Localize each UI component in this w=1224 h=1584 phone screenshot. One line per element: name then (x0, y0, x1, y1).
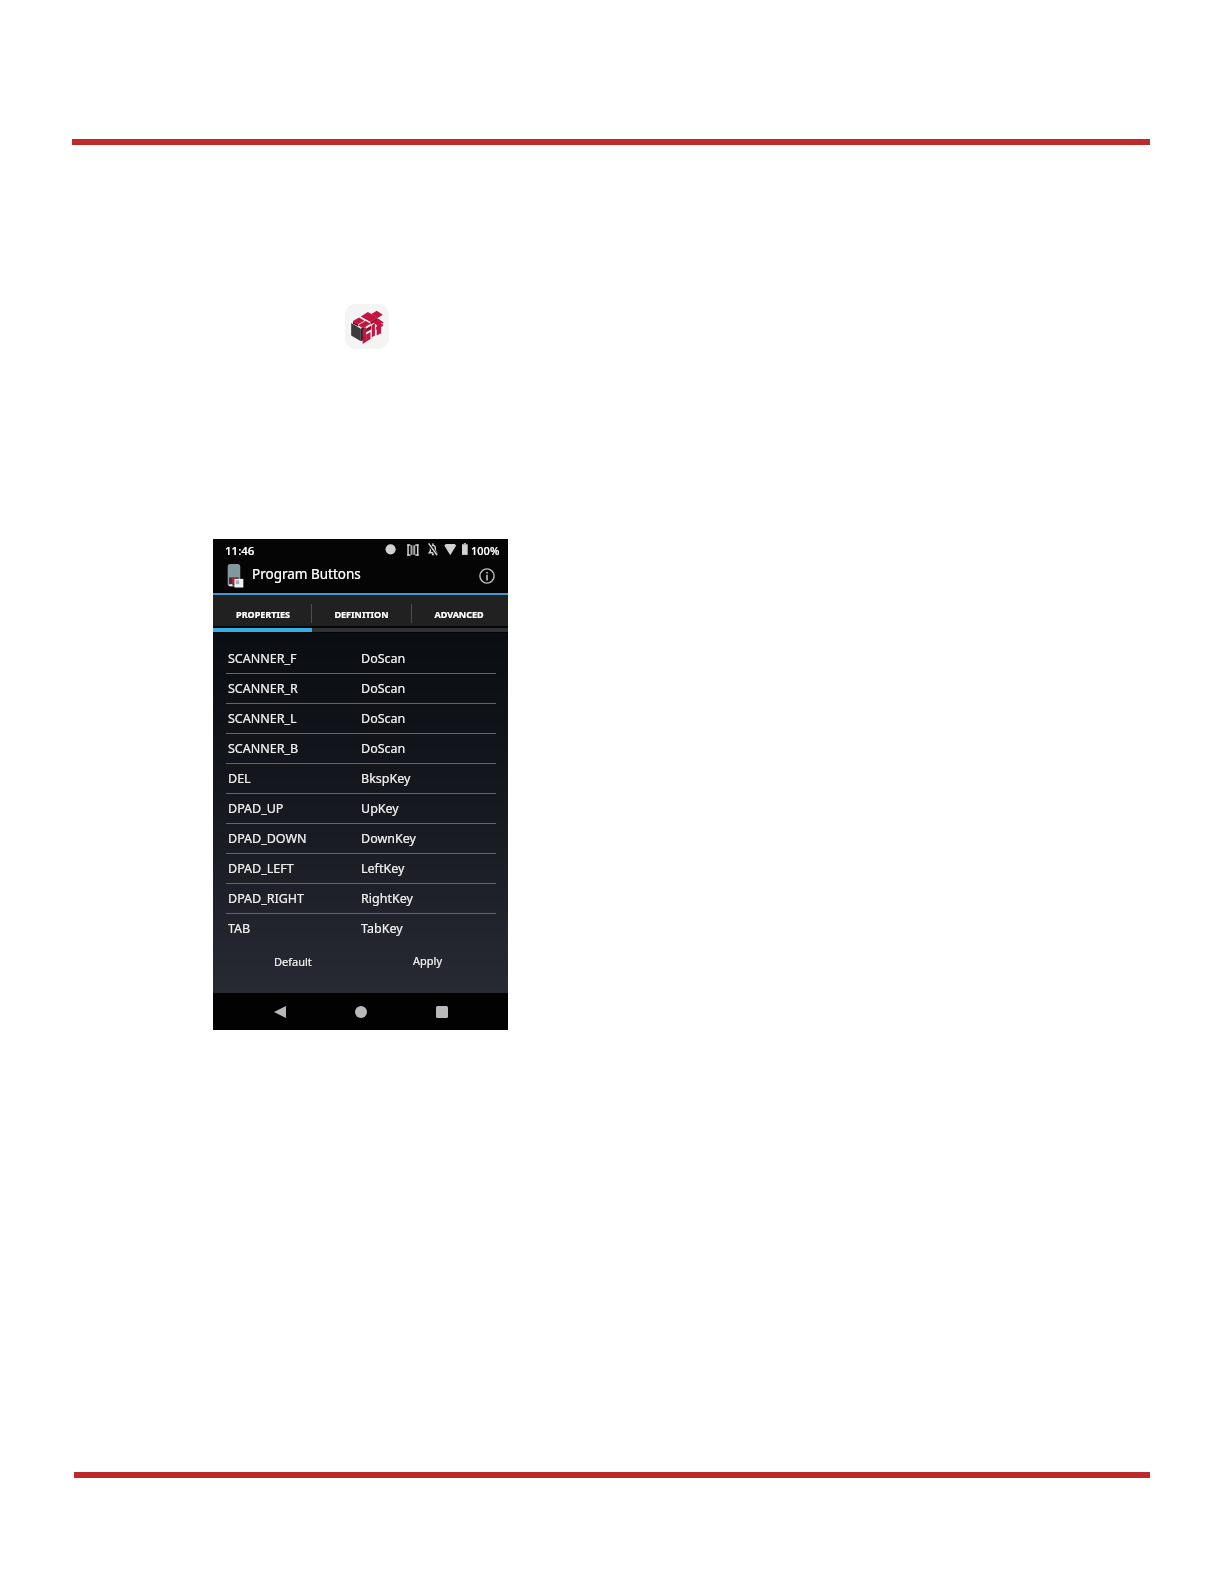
button[interactable]: DPAD_UP (213, 793, 508, 823)
staticText: ADVANCED (434, 608, 484, 620)
staticText: 11:46 (225, 543, 255, 559)
staticText: 100% (471, 543, 500, 558)
staticText: DoScan (361, 650, 406, 667)
staticText: DownKey (361, 830, 416, 847)
staticText: SCANNER_F (228, 650, 297, 667)
button[interactable]: SCANNER_L (213, 703, 508, 733)
staticText: DPAD_LEFT (228, 860, 294, 877)
staticText: TAB (228, 920, 251, 937)
staticText: TabKey (361, 920, 403, 937)
button[interactable]: PROPERTIES (213, 598, 312, 629)
staticText: DPAD_UP (228, 800, 284, 817)
staticText: SCANNER_B (228, 740, 299, 757)
staticText: SCANNER_R (228, 680, 298, 697)
button[interactable]: DEFINITION (312, 598, 410, 629)
staticText: LeftKey (361, 860, 405, 877)
button[interactable]: TAB (213, 913, 508, 943)
staticText: Apply (413, 953, 443, 968)
button[interactable]: ADVANCED (410, 598, 508, 629)
staticText: Program Buttons (252, 565, 361, 583)
staticText: DPAD_DOWN (228, 830, 307, 847)
button[interactable]: SCANNER_F (213, 643, 508, 673)
button[interactable]: Home (349, 1000, 373, 1024)
button[interactable]: SCANNER_B (213, 733, 508, 763)
staticText: DEL (228, 770, 251, 787)
staticText: UpKey (361, 800, 399, 817)
staticText: SCANNER_L (228, 710, 297, 727)
button[interactable]: SCANNER_R (213, 673, 508, 703)
staticText: BkspKey (361, 770, 411, 787)
button[interactable]: Back (268, 1000, 292, 1024)
staticText: DoScan (361, 740, 406, 757)
staticText: DPAD_RIGHT (228, 890, 305, 907)
button[interactable]: Recents (430, 1000, 454, 1024)
button[interactable]: Info (475, 564, 499, 588)
staticText: RightKey (361, 890, 413, 907)
staticText: PROPERTIES (236, 608, 290, 620)
staticText: Default (274, 954, 312, 969)
staticText: DoScan (361, 680, 406, 697)
button[interactable]: DPAD_LEFT (213, 853, 508, 883)
button[interactable]: Apply (398, 945, 458, 975)
button[interactable]: DEL (213, 763, 508, 793)
staticText: DoScan (361, 710, 406, 727)
staticText: DEFINITION (334, 608, 389, 620)
button[interactable]: DPAD_DOWN (213, 823, 508, 853)
button[interactable]: DPAD_RIGHT (213, 883, 508, 913)
button[interactable]: Default (263, 946, 323, 976)
